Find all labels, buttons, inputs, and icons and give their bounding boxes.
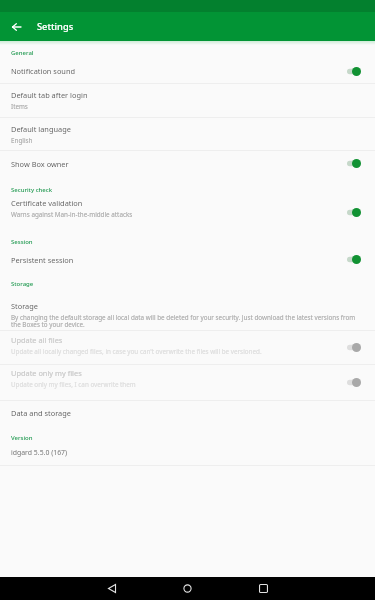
staticText: Security check — [11, 186, 53, 194]
staticText: Settings — [37, 20, 74, 33]
button[interactable]: Certificate validation — [0, 200, 375, 225]
staticText: Storage — [11, 280, 34, 288]
staticText: Default tab after login — [11, 90, 88, 100]
staticText: Warns against Man-in-the-middle attacks — [11, 210, 133, 219]
staticText: Update all locally changed files, in cas… — [11, 347, 262, 356]
staticText: idgard 5.5.0 (167) — [11, 448, 361, 457]
button[interactable]: Recents — [252, 577, 275, 600]
button[interactable]: Show Box owner — [0, 151, 375, 176]
button[interactable]: Default language — [0, 118, 375, 150]
staticText: By changing the default storage all loca… — [11, 313, 364, 329]
button[interactable]: Persistent session — [0, 247, 375, 272]
button[interactable]: idgard 5.5.0 (167) — [0, 445, 375, 465]
button[interactable]: Home — [176, 577, 199, 600]
button[interactable]: Storage — [0, 295, 375, 330]
staticText: Version — [11, 434, 33, 442]
button[interactable]: Back — [0, 12, 32, 41]
staticText: Update only my files — [11, 368, 82, 378]
staticText: Update all files — [11, 335, 63, 345]
button[interactable]: Update all files — [0, 331, 375, 364]
staticText: Items — [11, 102, 28, 111]
staticText: Session — [11, 238, 33, 246]
button[interactable]: Back — [100, 577, 123, 600]
button[interactable]: Update only my files — [0, 365, 375, 400]
staticText: Data and storage — [11, 408, 361, 418]
button[interactable]: Notification sound — [0, 59, 375, 83]
staticText: Default language — [11, 124, 71, 134]
button[interactable]: Data and storage — [0, 401, 375, 427]
button[interactable]: Default tab after login — [0, 84, 375, 117]
staticText: Show Box owner — [11, 159, 347, 169]
staticText: Certificate validation — [11, 198, 83, 208]
staticText: Update only my files, I can overwrite th… — [11, 380, 136, 389]
staticText: English — [11, 136, 33, 145]
staticText: General — [11, 49, 34, 57]
staticText: Notification sound — [11, 66, 347, 76]
staticText: Storage — [11, 301, 38, 311]
staticText: Persistent session — [11, 255, 347, 265]
